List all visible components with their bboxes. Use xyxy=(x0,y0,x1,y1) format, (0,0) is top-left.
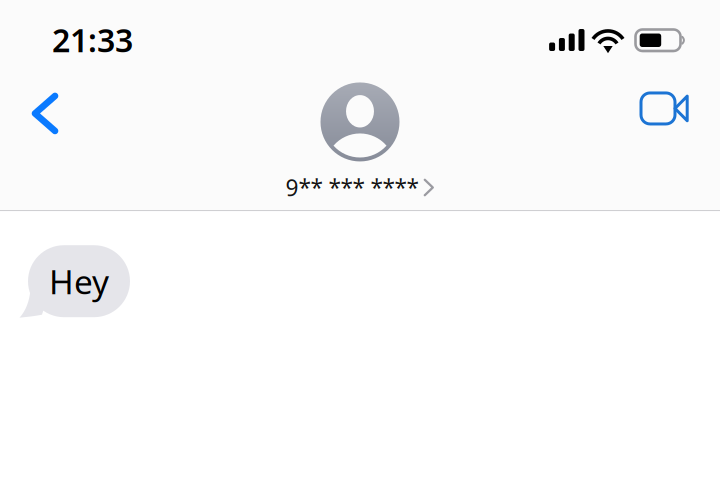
staticText: Hey xyxy=(49,259,109,303)
staticText: 9** *** **** xyxy=(285,172,418,202)
staticText: 21:33 xyxy=(52,18,133,61)
button[interactable]: 9** *** **** xyxy=(285,79,434,202)
button[interactable]: Back xyxy=(18,85,77,151)
button[interactable]: FaceTime video call xyxy=(623,87,702,150)
